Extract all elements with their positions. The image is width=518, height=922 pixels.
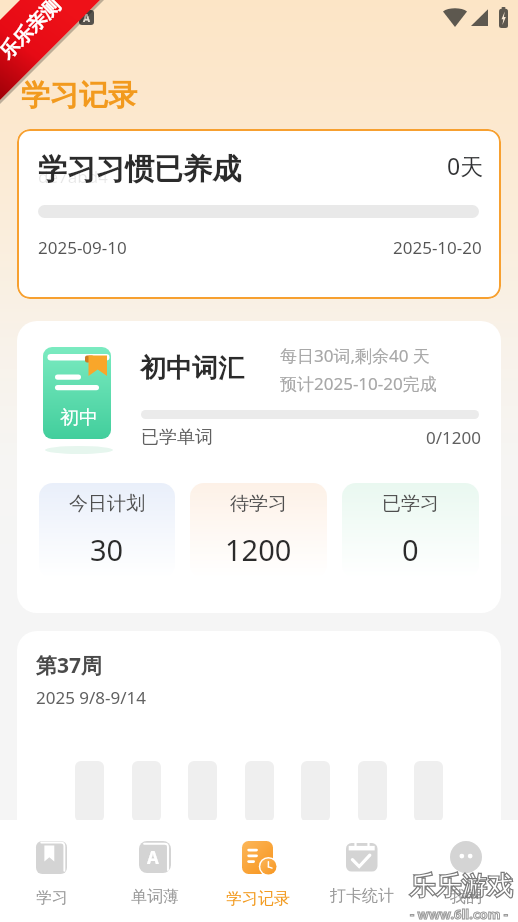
staticText: A (147, 846, 159, 869)
staticText: 已学单词 (141, 426, 213, 449)
staticText: 1200 (225, 530, 292, 569)
staticText: 学习习惯已养成 (38, 151, 241, 188)
staticText: 初中词汇 (140, 352, 244, 385)
staticText: - www.6ll.com - (410, 905, 508, 922)
button[interactable]: 我的 (414, 820, 518, 922)
staticText: 2025-09-10 (38, 236, 127, 259)
staticText: 2025-10-20 (393, 236, 482, 259)
staticText: de7abd4 (38, 165, 108, 188)
button[interactable]: 学习 (0, 820, 103, 922)
staticText: 0/1200 (426, 426, 481, 449)
button[interactable]: 今日计划 (39, 483, 175, 578)
staticText: 0 (402, 530, 419, 569)
staticText: 30 (90, 530, 124, 569)
staticText: 2025 9/8-9/14 (36, 686, 147, 709)
staticText: 学习 (36, 888, 68, 908)
staticText: A (83, 11, 90, 25)
staticText: 乐乐游戏 (409, 870, 513, 903)
staticText: 初中 (60, 406, 98, 430)
staticText: 学习记录 (226, 889, 290, 909)
staticText: 乐乐亲测 (0, 0, 77, 76)
staticText: 我的 (450, 887, 482, 907)
staticText: 打卡统计 (330, 886, 394, 906)
staticText: 待学习 (230, 492, 287, 516)
button[interactable]: 待学习 (190, 483, 327, 578)
button[interactable]: 学习记录 (206, 820, 310, 922)
staticText: 今日计划 (69, 492, 145, 516)
button[interactable]: 第37周 (17, 631, 501, 856)
staticText: 第37周 (36, 651, 103, 680)
staticText: 已学习 (382, 492, 439, 516)
button[interactable]: 初中 (17, 321, 501, 613)
button[interactable]: de7abd4 (17, 129, 501, 299)
staticText: 预计2025-10-20完成 (280, 372, 437, 395)
staticText: 每日30词,剩余40 天 (280, 344, 430, 367)
button[interactable]: A (103, 820, 206, 922)
button[interactable]: 已学习 (342, 483, 479, 578)
staticText: 单词薄 (131, 887, 179, 907)
staticText: 0天 (447, 150, 484, 181)
staticText: 学习记录 (21, 77, 137, 114)
button[interactable]: 打卡统计 (310, 820, 414, 922)
